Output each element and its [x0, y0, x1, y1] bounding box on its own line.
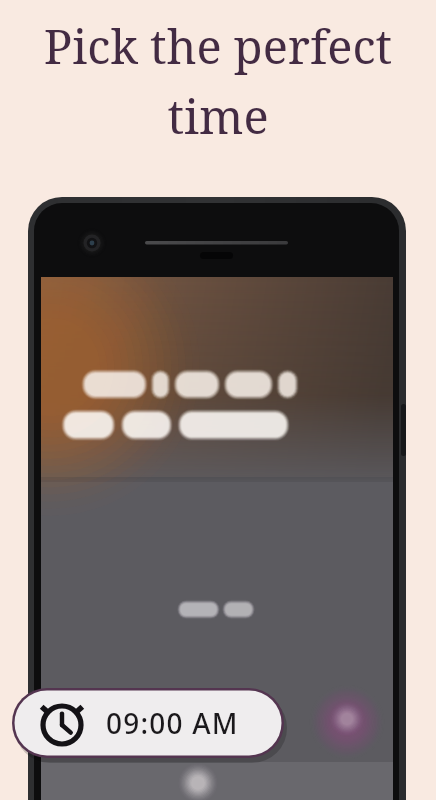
button[interactable]: Play [323, 698, 371, 746]
button[interactable]: Alarm time 09:00 AM [12, 688, 284, 758]
staticText: Pick the perfect time [18, 14, 418, 148]
staticText: 09:00 AM [106, 704, 239, 742]
